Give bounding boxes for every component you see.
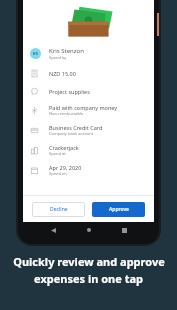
button[interactable]: Decline	[32, 202, 85, 217]
button[interactable]: Business Credit Card	[23, 120, 154, 140]
button[interactable]: Recents	[118, 224, 130, 236]
staticText: KS	[33, 51, 38, 56]
staticText: Decline	[50, 206, 68, 213]
staticText: Apr 29, 2020	[49, 164, 82, 171]
staticText: Spend at	[49, 151, 66, 156]
staticText: expenses in one tap	[34, 271, 143, 286]
button[interactable]: Approve	[92, 202, 145, 217]
staticText: NZD 15.00	[49, 70, 76, 77]
button[interactable]: Back	[47, 224, 59, 236]
staticText: Quickly review and approve	[13, 254, 165, 269]
button[interactable]: Home	[83, 224, 95, 236]
staticText: Project supplies	[49, 88, 90, 95]
staticText: Kris Stenzon	[49, 47, 84, 55]
button[interactable]: Crackerjack	[23, 140, 154, 160]
staticText: Spend by	[49, 55, 67, 60]
staticText: Business Credit Card	[49, 124, 103, 131]
staticText: Approve	[109, 206, 129, 213]
staticText: Spend on	[49, 171, 67, 176]
staticText: Crackerjack	[49, 144, 79, 151]
button[interactable]: Project supplies	[23, 82, 154, 100]
staticText: Paid with company money	[49, 104, 118, 111]
button[interactable]: KS	[23, 42, 154, 64]
button[interactable]: Paid with company money	[23, 100, 154, 120]
button[interactable]: Apr 29, 2020	[23, 160, 154, 180]
staticText: Company bank account	[49, 131, 94, 136]
button[interactable]: NZD 15.00	[23, 64, 154, 82]
staticText: Non-reimbursable	[49, 111, 84, 116]
